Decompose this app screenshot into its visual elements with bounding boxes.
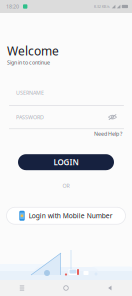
staticText: PASSWORD (16, 114, 44, 121)
button[interactable]: Need Help ? (94, 130, 122, 137)
staticText: OR (62, 182, 69, 189)
staticText: Login with Mobile Number (29, 211, 113, 220)
staticText: Need Help ? (94, 130, 122, 137)
staticText: Welcome (7, 43, 59, 59)
staticText: Sign in to continue (7, 59, 50, 66)
button[interactable]: LOGIN (18, 154, 114, 170)
staticText: LOGIN (53, 157, 78, 167)
button[interactable]: Login with Mobile Number (6, 207, 125, 224)
staticText: USERNAME (16, 89, 44, 96)
button[interactable]: Recents (0, 280, 44, 296)
button[interactable]: Back (88, 280, 132, 296)
staticText: 18:20 (6, 3, 19, 10)
button[interactable]: Home (44, 280, 88, 296)
button[interactable]: Show password (107, 113, 118, 121)
staticText: 8.32 KB/s (94, 4, 110, 9)
